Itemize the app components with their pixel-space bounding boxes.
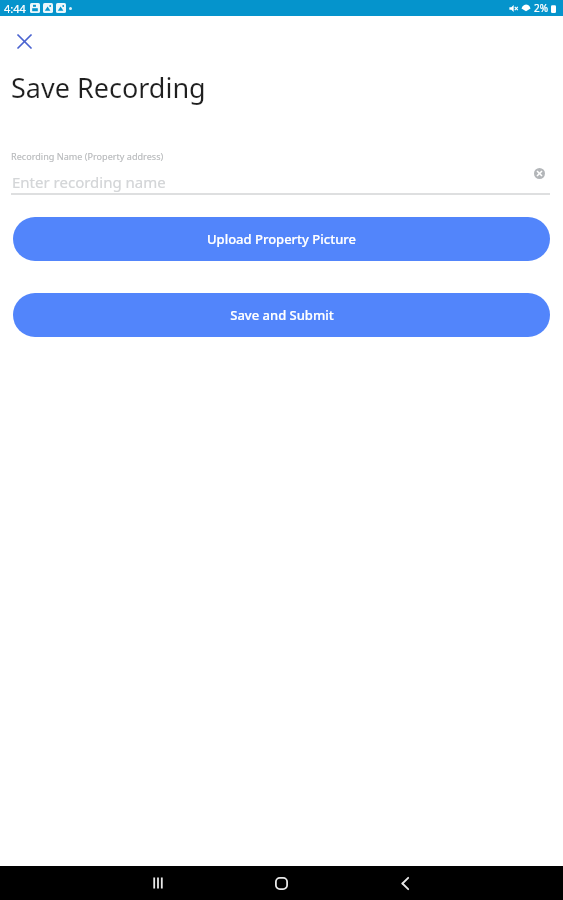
button[interactable]: Home — [264, 866, 298, 900]
staticText: 2% — [534, 1, 549, 15]
button[interactable]: Save and Submit — [13, 293, 550, 337]
button[interactable]: Clear text — [528, 162, 550, 184]
button[interactable]: Close — [8, 25, 40, 57]
staticText: Recording Name (Property address) — [11, 150, 164, 162]
button[interactable]: Back — [388, 866, 422, 900]
button[interactable]: Upload Property Picture — [13, 217, 550, 261]
staticText: 4:44 — [4, 1, 26, 16]
button[interactable]: Recents — [141, 866, 175, 900]
staticText: Save Recording — [11, 69, 206, 106]
staticText: Save and Submit — [230, 306, 334, 324]
staticText: Upload Property Picture — [207, 230, 356, 248]
staticText: Enter recording name — [12, 172, 166, 192]
